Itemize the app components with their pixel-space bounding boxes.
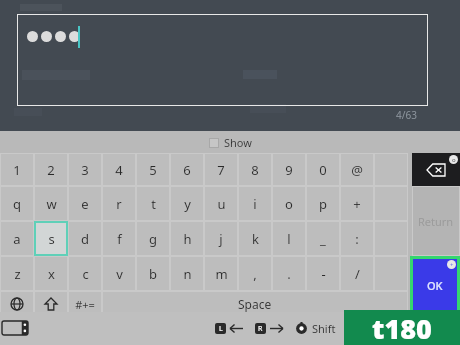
staticText: n [183,265,192,283]
button[interactable]: Show [209,135,252,150]
button[interactable]: Space [102,291,408,317]
staticText: c [82,265,89,283]
staticText: Space [238,296,272,312]
staticText: r [116,195,122,213]
button[interactable] [374,256,408,291]
button[interactable]: 4 [102,153,136,186]
staticText: R [258,324,263,334]
button[interactable]: i [238,186,272,221]
button[interactable]: 3 [68,153,102,186]
staticText: m [215,265,228,283]
button[interactable]: g [136,221,170,256]
staticText: 3 [81,161,89,179]
button[interactable]: w [34,186,68,221]
button[interactable]: 9 [272,153,306,186]
button[interactable] [374,221,408,256]
button[interactable]: a [0,221,34,256]
staticText: b [149,265,157,283]
staticText: e [81,195,89,213]
button[interactable]: / [340,256,374,291]
button[interactable]: f [102,221,136,256]
button[interactable]: x [34,256,68,291]
button[interactable]: t [136,186,170,221]
button[interactable]: , [238,256,272,291]
button[interactable]: 8 [238,153,272,186]
staticText: g [149,230,157,248]
staticText: 8 [251,161,259,179]
button[interactable]: _ [306,221,340,256]
button[interactable]: u [204,186,238,221]
button[interactable]: j [204,221,238,256]
staticText: o [285,195,293,213]
button[interactable]: 6 [170,153,204,186]
staticText: + [353,195,361,213]
button[interactable]: h [170,221,204,256]
button[interactable]: #+= [68,291,102,317]
button[interactable]: @ [340,153,374,186]
button[interactable] [17,14,428,106]
button[interactable]: Return [412,186,460,256]
button[interactable]: + [340,186,374,221]
staticText: d [81,230,89,248]
button[interactable]: s [34,221,68,256]
button[interactable]: p [306,186,340,221]
button[interactable]: 1 [0,153,34,186]
button[interactable]: . [272,256,306,291]
staticText: _ [320,230,326,248]
staticText: 4 [115,161,123,179]
button[interactable]: Backspace [412,153,460,186]
button[interactable]: 5 [136,153,170,186]
button[interactable]: Shift [34,291,68,317]
button[interactable]: e [68,186,102,221]
button[interactable]: n [170,256,204,291]
button[interactable]: d [68,221,102,256]
staticText: 9 [285,161,293,179]
button[interactable]: OK [413,259,457,311]
button[interactable]: b [136,256,170,291]
staticText: 5 [149,161,157,179]
staticText: o [452,156,456,164]
staticText: - [321,265,326,283]
staticText: , [253,265,257,283]
button[interactable]: v [102,256,136,291]
staticText: L [219,324,223,334]
button[interactable]: o [272,186,306,221]
button[interactable] [374,186,408,221]
button[interactable]: Language [0,291,34,317]
button[interactable]: Console [2,320,28,336]
staticText: y [184,195,191,213]
staticText: / [355,265,360,283]
staticText: x [48,265,55,283]
staticText: #+= [75,297,95,312]
staticText: 4/63 [396,108,417,122]
staticText: s [48,230,55,248]
staticText: l [287,230,291,248]
staticText: h [183,230,192,248]
button[interactable]: r [102,186,136,221]
button[interactable]: 2 [34,153,68,186]
staticText: : [355,230,359,248]
staticText: w [46,195,57,213]
staticText: 1 [13,161,21,179]
button[interactable]: y [170,186,204,221]
button[interactable]: l [272,221,306,256]
button[interactable]: 7 [204,153,238,186]
button[interactable]: k [238,221,272,256]
staticText: @ [351,161,363,179]
button[interactable]: m [204,256,238,291]
button[interactable]: 0 [306,153,340,186]
staticText: Return [418,214,454,229]
button[interactable]: q [0,186,34,221]
staticText: t180 [372,310,432,345]
button[interactable]: - [306,256,340,291]
button[interactable]: z [0,256,34,291]
staticText: 7 [217,161,225,179]
button[interactable] [374,153,408,186]
staticText: Shift [312,321,336,336]
button[interactable]: c [68,256,102,291]
staticText: a [13,230,21,248]
button[interactable]: : [340,221,374,256]
